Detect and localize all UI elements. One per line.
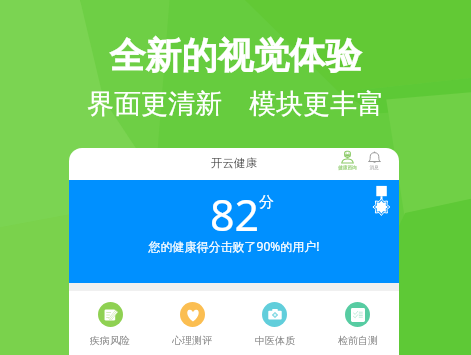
staticText: 消息 [369, 165, 379, 171]
button[interactable]: 消息 [361, 151, 387, 171]
staticText: 开云健康 [211, 156, 257, 170]
button[interactable]: 检前自测 [316, 302, 399, 347]
button[interactable]: 心理测评 [151, 302, 233, 347]
staticText: 心理测评 [172, 334, 212, 347]
staticText: 疾病风险 [90, 334, 130, 347]
staticText: 界面更清新 模块更丰富 [0, 84, 471, 121]
button[interactable]: 疾病风险 [69, 302, 151, 347]
staticText: 健康咨询 [338, 165, 357, 171]
staticText: 分 [259, 193, 274, 212]
staticText: 检前自测 [338, 334, 378, 347]
button[interactable]: 中医体质 [233, 302, 316, 347]
staticText: 中医体质 [255, 334, 295, 347]
button[interactable]: 健康咨询 [334, 151, 360, 171]
staticText: 全新的视觉体验 [0, 33, 471, 78]
staticText: 您的健康得分击败了90%的用户! [69, 238, 399, 254]
staticText: 82 [210, 185, 260, 244]
